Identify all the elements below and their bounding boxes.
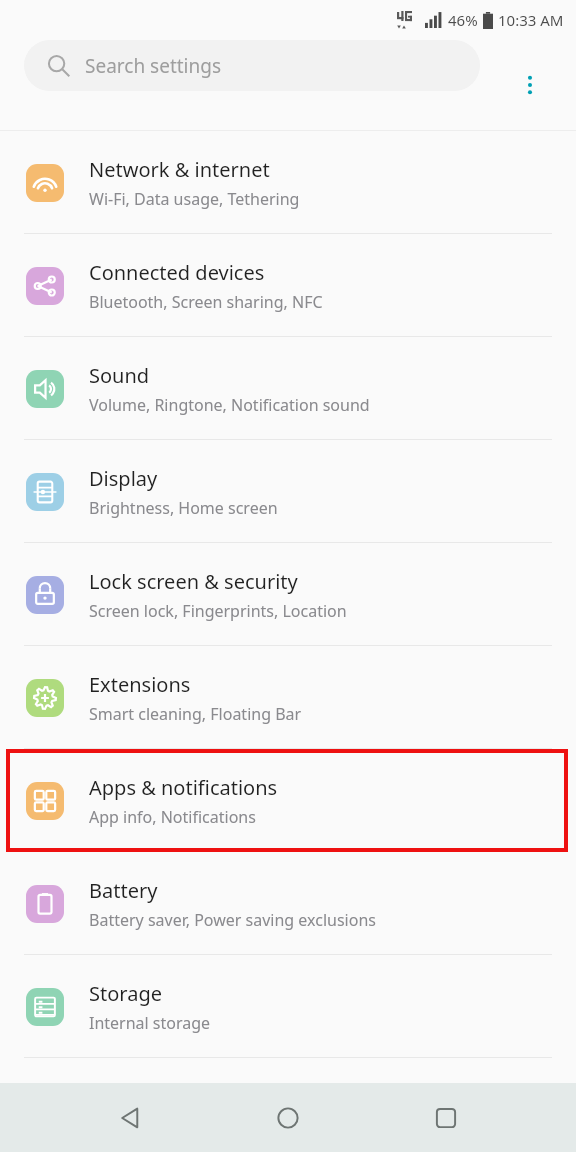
button[interactable]: Extensions (0, 646, 576, 749)
staticText: Wi-Fi, Data usage, Tethering (89, 188, 300, 210)
button[interactable]: Search settings (24, 40, 480, 91)
button[interactable]: Apps & notifications (0, 749, 576, 852)
button[interactable]: Sound (0, 337, 576, 440)
button[interactable]: Lock screen & security (0, 543, 576, 646)
staticText: 46% (448, 10, 478, 30)
staticText: Display (89, 465, 158, 492)
staticText: Battery saver, Power saving exclusions (89, 909, 376, 931)
button[interactable]: Battery (0, 852, 576, 955)
button[interactable]: Storage (0, 955, 576, 1058)
button[interactable]: Display (0, 440, 576, 543)
button[interactable]: Connected devices (0, 234, 576, 337)
staticText: Lock screen & security (89, 568, 298, 595)
staticText: Search settings (85, 53, 222, 79)
staticText: Battery (89, 877, 158, 904)
button[interactable]: Recents (418, 1090, 474, 1146)
button[interactable]: Home (260, 1090, 316, 1146)
staticText: 10:33 AM (498, 10, 564, 30)
button[interactable]: Back (102, 1090, 158, 1146)
button[interactable]: Network & internet (0, 131, 576, 234)
staticText: Extensions (89, 671, 191, 698)
button[interactable]: More options (506, 61, 554, 109)
staticText: App info, Notifications (89, 806, 256, 828)
staticText: Smart cleaning, Floating Bar (89, 703, 302, 725)
staticText: Connected devices (89, 259, 265, 286)
staticText: Internal storage (89, 1012, 211, 1034)
staticText: Screen lock, Fingerprints, Location (89, 600, 347, 622)
staticText: Sound (89, 362, 150, 389)
staticText: Apps & notifications (89, 774, 278, 801)
staticText: Brightness, Home screen (89, 497, 278, 519)
staticText: Network & internet (89, 156, 270, 183)
staticText: Bluetooth, Screen sharing, NFC (89, 291, 323, 313)
staticText: Storage (89, 980, 162, 1007)
staticText: Volume, Ringtone, Notification sound (89, 394, 370, 416)
